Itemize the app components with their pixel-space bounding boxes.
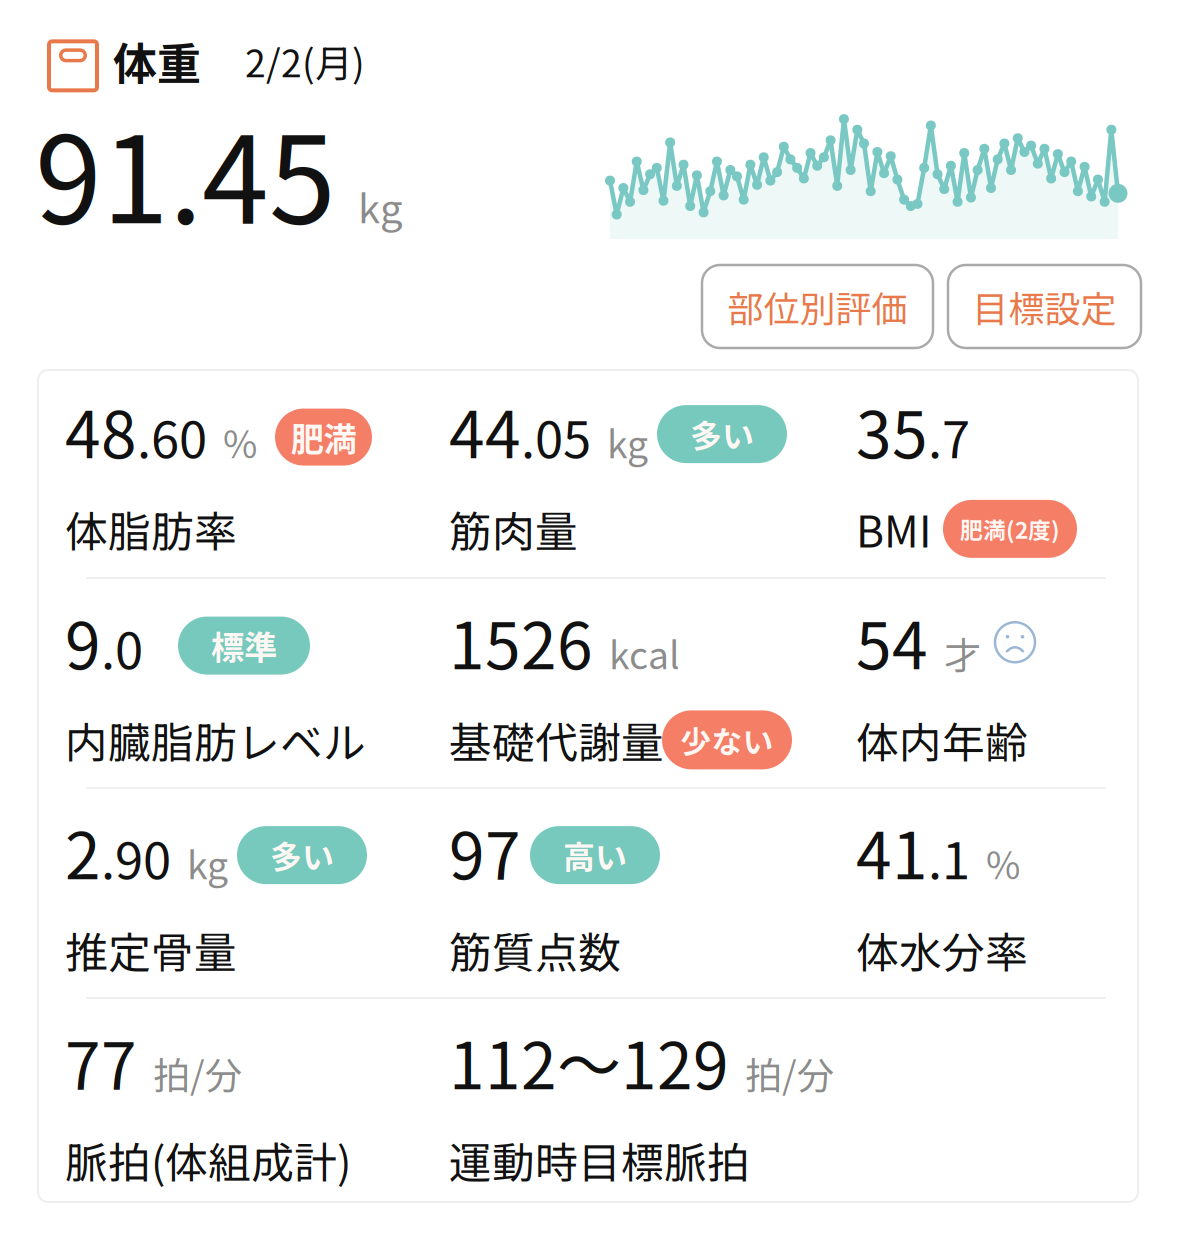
staticText: % (223, 415, 257, 469)
staticText: 肥満(2度) (960, 512, 1060, 545)
staticText: 48 (65, 384, 137, 477)
staticText: 少ない (680, 718, 773, 762)
staticText: 高い (563, 832, 627, 878)
staticText: 体内年齢 (856, 709, 1028, 771)
staticText: .0 (101, 610, 143, 684)
staticText: 推定骨量 (65, 919, 237, 981)
staticText: 2/2(月) (245, 34, 365, 88)
staticText: 体脂肪率 (65, 498, 237, 560)
staticText: 肥満 (290, 413, 356, 461)
staticText: 脈拍(体組成計) (65, 1129, 351, 1191)
staticText: 91.45 (35, 84, 336, 258)
staticText: 97 (449, 805, 521, 898)
staticText: 体重 (113, 29, 201, 93)
staticText: 35 (856, 384, 928, 477)
staticText: 運動時目標脈拍 (449, 1129, 750, 1191)
staticText: .1 (928, 820, 970, 894)
staticText: kg (187, 836, 228, 890)
staticText: 標準 (211, 621, 277, 670)
staticText: 筋質点数 (449, 919, 621, 981)
staticText: 9 (65, 595, 101, 688)
staticText: 体水分率 (856, 919, 1028, 981)
staticText: kg (607, 415, 648, 469)
staticText: 54 (856, 595, 928, 688)
staticText: 112〜129 (449, 1015, 729, 1108)
staticText: .60 (137, 399, 207, 473)
staticText: 目標設定 (972, 280, 1116, 332)
staticText: .05 (521, 399, 591, 473)
staticText: .90 (101, 820, 171, 894)
staticText: kg (358, 177, 403, 235)
staticText: 才 (944, 626, 981, 680)
staticText: 拍/分 (153, 1046, 242, 1100)
staticText: BMI (856, 498, 932, 560)
staticText: .7 (928, 399, 970, 473)
staticText: 41 (856, 805, 928, 898)
staticText: % (986, 836, 1020, 890)
staticText: 多い (270, 832, 334, 878)
staticText: 77 (65, 1015, 137, 1108)
staticText: 44 (449, 384, 521, 477)
staticText: 基礎代謝量 (449, 709, 664, 771)
staticText: 2 (65, 805, 101, 898)
button[interactable]: 目標設定 (948, 265, 1141, 348)
staticText: 1526 (449, 595, 593, 688)
staticText: 筋肉量 (449, 498, 578, 560)
staticText: 拍/分 (745, 1046, 834, 1100)
staticText: 内臓脂肪レベル (65, 709, 366, 771)
staticText: 多い (690, 411, 754, 457)
staticText: kcal (609, 626, 680, 680)
staticText: 部位別評価 (727, 280, 907, 332)
button[interactable]: 部位別評価 (702, 265, 933, 348)
